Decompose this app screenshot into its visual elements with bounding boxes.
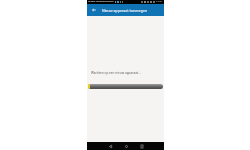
staticText: Wachten op een nieuw apparaat... bbox=[91, 71, 141, 75]
button[interactable]: Terug bbox=[102, 142, 118, 150]
staticText: Alleen noodoproepen bbox=[88, 0, 114, 2]
button[interactable]: Terug bbox=[87, 4, 100, 16]
button[interactable]: Home bbox=[118, 142, 134, 150]
button[interactable]: Recente apps bbox=[134, 142, 150, 150]
staticText: 19:41 bbox=[156, 0, 163, 2]
staticText: Nieuw apparaat toevoegen bbox=[102, 8, 148, 13]
